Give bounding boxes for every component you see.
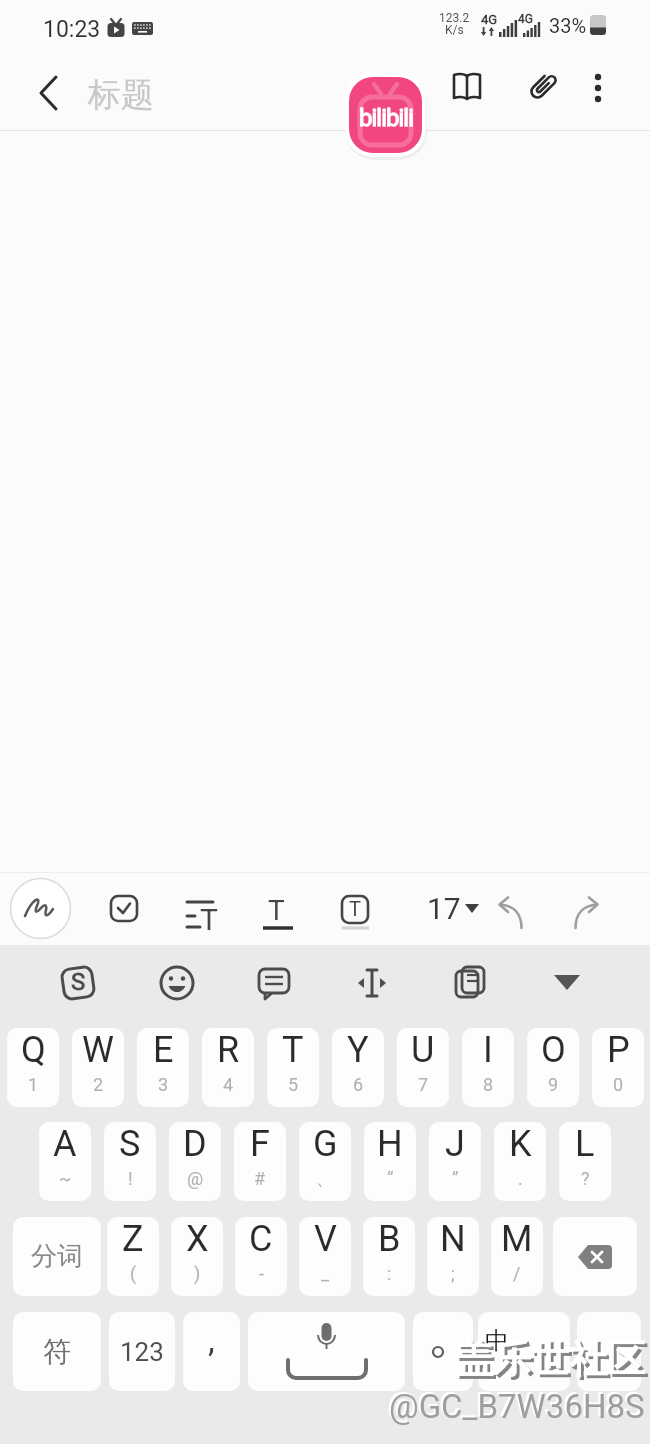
button[interactable]: S — [59, 964, 97, 1002]
staticText: 分词 — [31, 1240, 83, 1273]
button[interactable]: 17 — [424, 890, 486, 930]
button[interactable]: , — [183, 1312, 240, 1391]
button[interactable]: S — [104, 1122, 156, 1201]
button[interactable]: F — [234, 1122, 286, 1201]
staticText: ; — [451, 1263, 455, 1284]
staticText: 2 — [93, 1074, 104, 1095]
button[interactable]: A — [39, 1122, 91, 1201]
staticText: N — [440, 1218, 466, 1260]
button[interactable] — [490, 890, 530, 930]
button[interactable]: Q — [7, 1028, 59, 1107]
staticText: 盖乐世社区 — [458, 1338, 648, 1386]
button[interactable] — [448, 69, 486, 107]
button[interactable] — [583, 62, 613, 112]
button[interactable] — [10, 878, 71, 939]
button[interactable]: C — [235, 1217, 287, 1296]
staticText: 符 — [43, 1334, 71, 1369]
staticText: . — [518, 1168, 523, 1189]
staticText: T — [200, 902, 218, 934]
button[interactable]: B — [363, 1217, 415, 1296]
button[interactable]: L — [559, 1122, 611, 1201]
staticText: O — [541, 1029, 566, 1071]
staticText: 123 — [120, 1337, 164, 1367]
button[interactable]: 符 — [13, 1312, 101, 1391]
button[interactable]: M — [491, 1217, 543, 1296]
staticText: 0 — [613, 1074, 624, 1095]
button[interactable]: J — [429, 1122, 481, 1201]
staticText: U — [411, 1029, 435, 1071]
button[interactable]: T — [183, 894, 227, 926]
staticText: A — [53, 1123, 77, 1165]
button[interactable] — [248, 1312, 405, 1391]
button[interactable] — [256, 965, 292, 1001]
button[interactable] — [478, 1312, 570, 1391]
button[interactable] — [354, 965, 390, 1001]
button[interactable]: W — [72, 1028, 124, 1107]
button[interactable]: 123 — [109, 1312, 175, 1391]
button[interactable] — [553, 1217, 637, 1296]
staticText: I — [483, 1029, 493, 1071]
button[interactable] — [30, 74, 68, 112]
staticText: P — [607, 1029, 630, 1071]
button[interactable]: D — [169, 1122, 221, 1201]
staticText: D — [183, 1123, 207, 1165]
button[interactable]: V — [299, 1217, 351, 1296]
staticText: 4G — [481, 12, 498, 27]
button[interactable] — [522, 69, 560, 107]
button[interactable]: Y — [332, 1028, 384, 1107]
button[interactable] — [413, 1312, 473, 1391]
button[interactable]: X — [171, 1217, 223, 1296]
button[interactable]: bilibili — [345, 73, 427, 159]
staticText: 33% — [549, 14, 587, 37]
button[interactable]: 分词 — [13, 1217, 101, 1296]
button[interactable]: Z — [107, 1217, 159, 1296]
staticText: V — [314, 1218, 337, 1260]
staticText: 9 — [548, 1074, 559, 1095]
button[interactable]: N — [427, 1217, 479, 1296]
staticText: 盖乐世社区 — [455, 1335, 645, 1383]
staticText: X — [186, 1218, 209, 1260]
button[interactable]: E — [137, 1028, 189, 1107]
staticText: Q — [21, 1029, 46, 1071]
staticText: ~ — [59, 1168, 72, 1189]
button[interactable] — [452, 965, 488, 1001]
button[interactable]: T — [267, 1028, 319, 1107]
staticText: S — [119, 1123, 141, 1165]
button[interactable]: P — [592, 1028, 644, 1107]
button[interactable]: K — [494, 1122, 546, 1201]
staticText: 3 — [158, 1074, 169, 1095]
staticText: R — [217, 1029, 240, 1071]
button[interactable] — [158, 964, 196, 1002]
staticText: 标题 — [88, 74, 154, 116]
button[interactable]: H — [364, 1122, 416, 1201]
button[interactable]: U — [397, 1028, 449, 1107]
button[interactable]: O — [527, 1028, 579, 1107]
staticText: Y — [347, 1029, 369, 1071]
staticText: # — [254, 1168, 266, 1189]
staticText: 10:23 — [43, 16, 101, 43]
staticText: 、 — [316, 1168, 334, 1191]
button[interactable] — [577, 1312, 641, 1391]
staticText: M — [501, 1218, 533, 1260]
staticText: 7 — [418, 1074, 429, 1095]
staticText: , — [208, 1320, 215, 1360]
button[interactable]: R — [202, 1028, 254, 1107]
staticText: T — [268, 894, 285, 927]
staticText: 4G — [518, 12, 533, 26]
staticText: H — [377, 1123, 403, 1165]
staticText: 4 — [223, 1074, 234, 1095]
button[interactable]: T — [338, 894, 372, 932]
button[interactable]: T — [258, 894, 298, 928]
button[interactable]: I — [462, 1028, 514, 1107]
staticText: 8 — [483, 1074, 494, 1095]
staticText: K — [509, 1123, 532, 1165]
button[interactable]: G — [299, 1122, 351, 1201]
staticText: / — [513, 1263, 521, 1284]
button[interactable] — [552, 971, 584, 997]
staticText: 5 — [288, 1074, 299, 1095]
staticText: W — [82, 1029, 114, 1071]
button[interactable] — [105, 894, 143, 924]
staticText: C — [249, 1218, 273, 1260]
staticText: ( — [130, 1263, 137, 1284]
button[interactable] — [567, 890, 607, 930]
